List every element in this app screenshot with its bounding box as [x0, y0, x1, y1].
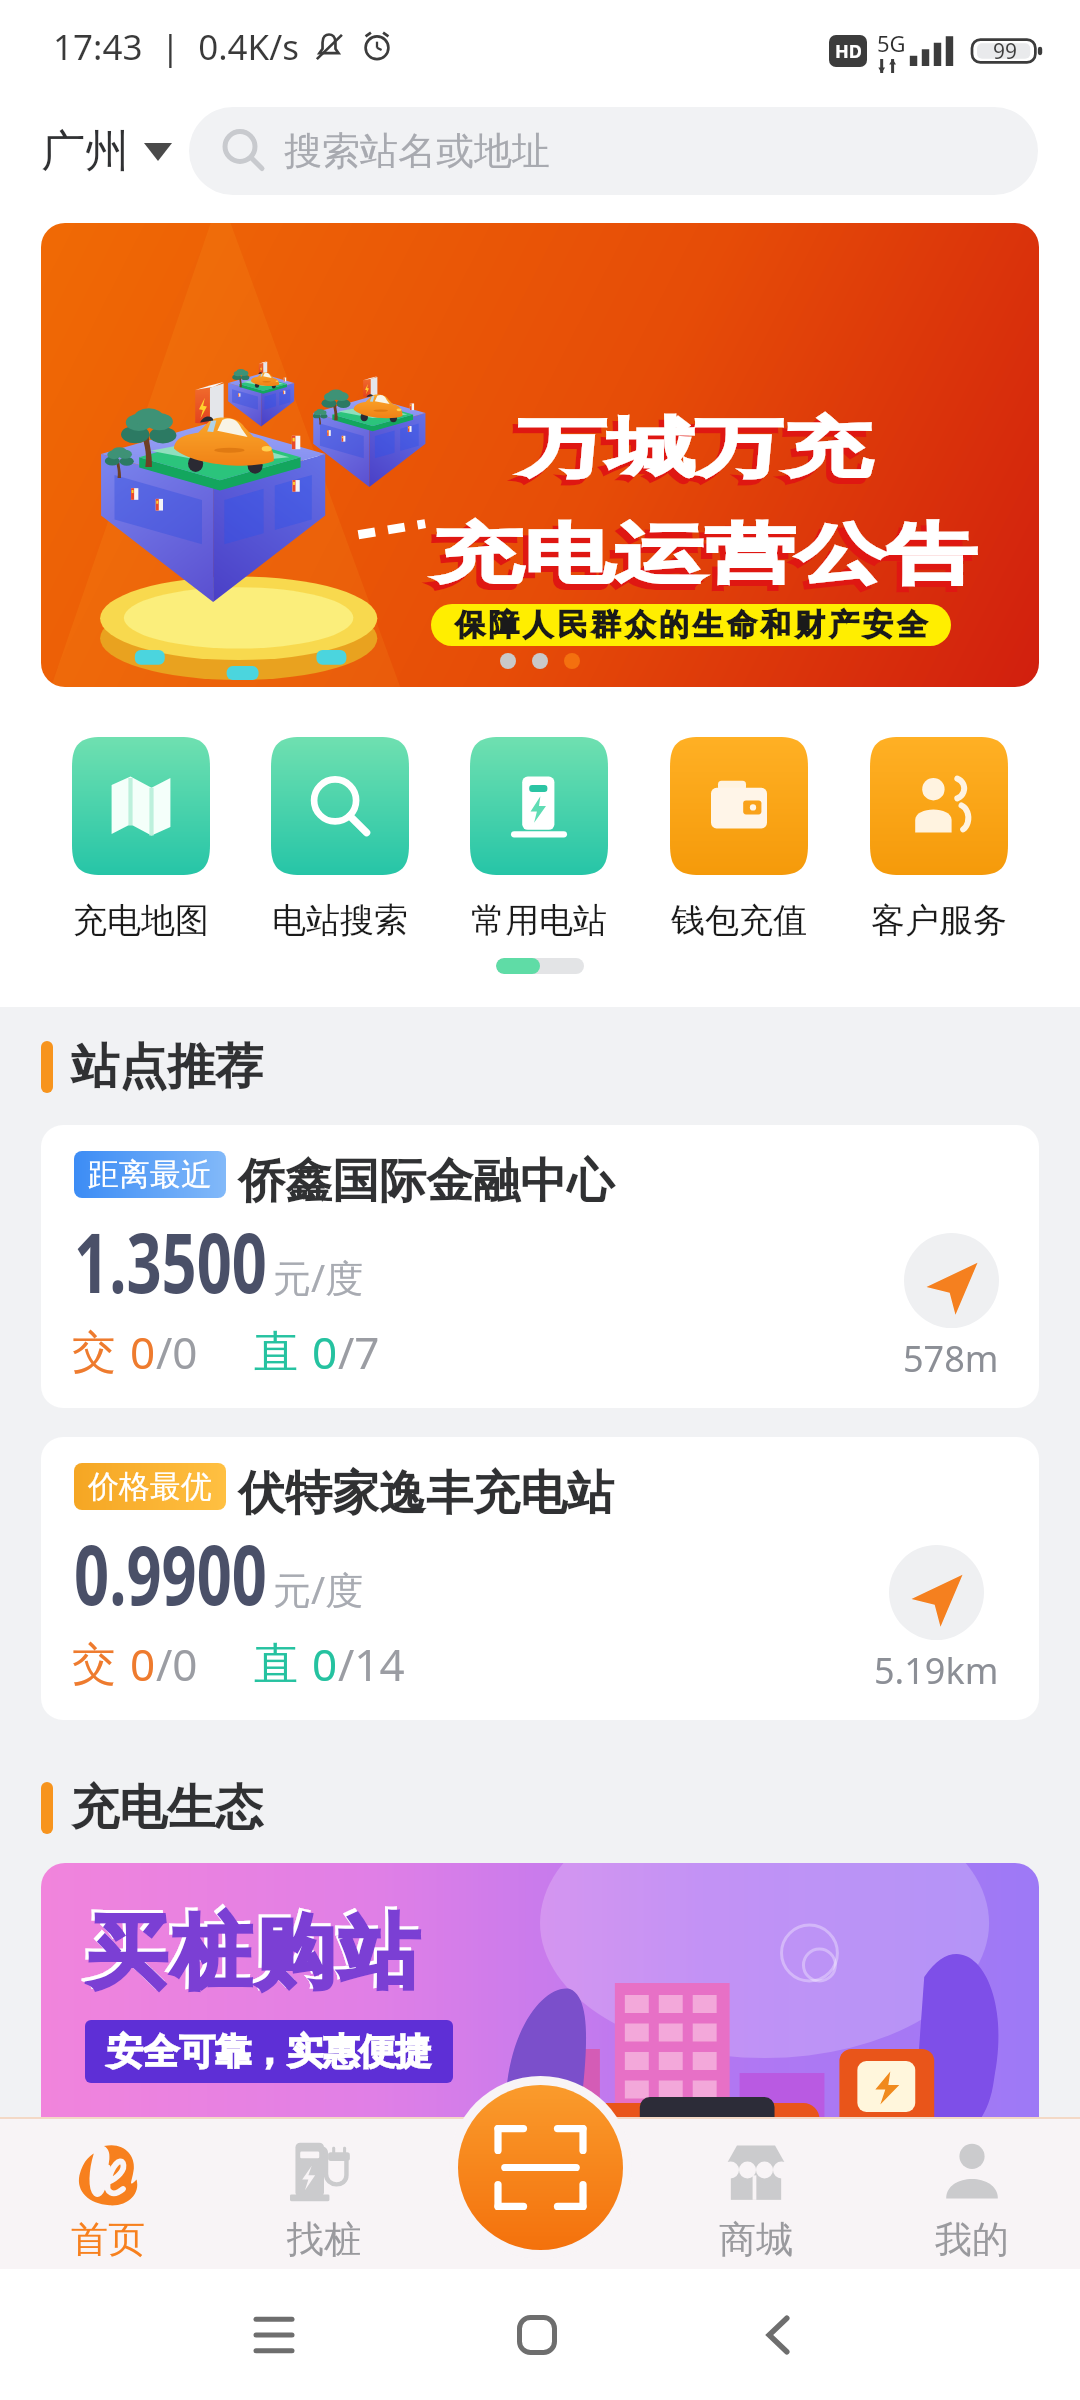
button[interactable]: 充电地图 — [41, 737, 240, 942]
staticText: 17:43 | 0.4K/s — [53, 23, 300, 71]
staticText: 充电地图 — [73, 899, 209, 942]
staticText: 交 — [72, 1325, 116, 1380]
staticText: 找桩 — [287, 2216, 361, 2263]
staticText: 常用电站 — [471, 899, 607, 942]
staticText: /14 — [338, 1634, 405, 1694]
button[interactable]: 钱包充值 — [639, 737, 839, 942]
button[interactable]: Back — [762, 2315, 802, 2355]
staticText: 安全可靠，实惠便捷 — [107, 2029, 431, 2074]
staticText: 1.3500 — [74, 1205, 267, 1317]
staticText: 5.19km — [874, 1646, 999, 1695]
staticText: 5G — [877, 28, 906, 58]
staticText: 买桩购站 — [82, 1900, 418, 2001]
staticText: 万城万充 — [518, 408, 872, 489]
button[interactable]: 广州 — [41, 124, 176, 179]
staticText: 广州 — [41, 124, 129, 179]
button[interactable]: Navigate — [874, 1545, 999, 1695]
staticText: 直 — [254, 1637, 298, 1692]
staticText: 伏特家逸丰充电站 — [238, 1464, 614, 1523]
staticText: 交 — [72, 1637, 116, 1692]
staticText: 距离最近 — [88, 1155, 212, 1194]
button[interactable]: Scan — [458, 2085, 623, 2250]
staticText: 0 — [312, 1634, 338, 1694]
staticText: 站点推荐 — [71, 1037, 263, 1097]
button[interactable]: Home — [517, 2315, 557, 2355]
staticText: 元/度 — [273, 1251, 364, 1303]
staticText: 元/度 — [273, 1563, 364, 1615]
staticText: 充电运营公告 — [427, 520, 972, 601]
button[interactable]: 首页 — [0, 2117, 216, 2263]
staticText: 直 — [254, 1325, 298, 1380]
button[interactable]: 价格最优 — [41, 1437, 1039, 1720]
staticText: 价格最优 — [88, 1467, 212, 1506]
button[interactable]: Recents — [256, 2299, 328, 2371]
button[interactable]: 商城 — [648, 2117, 864, 2263]
staticText: 买桩购站 — [85, 1903, 421, 2004]
staticText: 578m — [903, 1334, 999, 1383]
staticText: 0 — [130, 1322, 156, 1382]
button[interactable]: 万城万充 — [41, 223, 1039, 687]
button[interactable]: 常用电站 — [439, 737, 639, 942]
staticText: 万城万充 — [513, 414, 866, 495]
staticText: /0 — [156, 1634, 198, 1694]
staticText: 99 — [993, 37, 1018, 66]
button[interactable]: 找桩 — [216, 2117, 432, 2263]
staticText: 钱包充值 — [671, 899, 807, 942]
staticText: 充电运营公告 — [432, 514, 978, 595]
staticText: 侨鑫国际金融中心 — [238, 1152, 614, 1211]
button[interactable]: 搜索站名或地址 — [189, 107, 1038, 195]
staticText: 首页 — [71, 2216, 145, 2263]
staticText: HD — [835, 39, 862, 64]
button[interactable]: 距离最近 — [41, 1125, 1039, 1408]
staticText: 电站搜索 — [272, 899, 408, 942]
staticText: 0.9900 — [74, 1517, 267, 1629]
button[interactable]: Navigate — [903, 1233, 999, 1383]
staticText: 客户服务 — [871, 899, 1007, 942]
staticText: 0 — [130, 1634, 156, 1694]
button[interactable]: 客户服务 — [839, 737, 1039, 942]
staticText: 充电生态 — [71, 1778, 263, 1838]
staticText: /7 — [338, 1322, 380, 1382]
staticText: /0 — [156, 1322, 198, 1382]
staticText: 0 — [312, 1322, 338, 1382]
staticText: 我的 — [935, 2216, 1009, 2263]
staticText: 搜索站名或地址 — [284, 127, 550, 175]
button[interactable]: 电站搜索 — [240, 737, 439, 942]
button[interactable]: 买桩购站 — [41, 1863, 1039, 2163]
staticText: 商城 — [719, 2216, 793, 2263]
staticText: 保障人民群众的生命和财产安全 — [453, 606, 929, 644]
button[interactable]: 我的 — [864, 2117, 1080, 2263]
